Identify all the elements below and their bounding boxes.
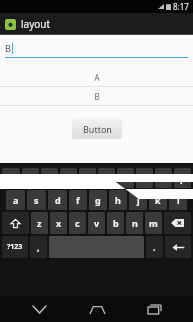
button[interactable]: o xyxy=(155,168,172,188)
staticText: c xyxy=(75,217,80,229)
staticText: x xyxy=(56,217,62,229)
staticText: r xyxy=(66,172,71,184)
staticText: Button xyxy=(83,123,112,135)
staticText: f xyxy=(76,194,80,206)
button[interactable]: B xyxy=(0,87,193,106)
button[interactable]: . xyxy=(146,236,163,258)
staticText: j xyxy=(137,194,140,206)
staticText: ?123 xyxy=(7,242,23,252)
button[interactable]: Recents xyxy=(136,296,172,322)
staticText: B xyxy=(5,42,11,54)
staticText: y xyxy=(104,172,110,184)
button[interactable]: Backspace xyxy=(164,212,191,234)
button[interactable]: k xyxy=(149,190,167,210)
staticText: w xyxy=(27,172,35,184)
button[interactable]: A xyxy=(0,68,193,87)
button[interactable]: x xyxy=(50,212,67,234)
button[interactable]: g xyxy=(89,190,107,210)
staticText: t xyxy=(86,172,90,184)
button[interactable]: e xyxy=(41,168,58,188)
staticText: o xyxy=(161,172,167,184)
staticText: u xyxy=(123,172,129,184)
staticText: i xyxy=(143,172,146,184)
staticText: h xyxy=(115,194,121,206)
button[interactable]: d xyxy=(48,190,67,210)
button[interactable]: l xyxy=(169,190,187,210)
button[interactable]: , xyxy=(30,236,47,258)
button[interactable]: b xyxy=(107,212,124,234)
staticText: g xyxy=(95,194,101,206)
staticText: d xyxy=(55,194,61,206)
button[interactable]: c xyxy=(69,212,86,234)
staticText: layout xyxy=(21,17,51,31)
staticText: , xyxy=(37,241,40,253)
button[interactable]: Hide keyboard xyxy=(21,296,57,322)
staticText: . xyxy=(153,241,156,253)
staticText: a xyxy=(13,194,19,206)
button[interactable]: z xyxy=(31,212,48,234)
button[interactable]: i xyxy=(136,168,153,188)
button[interactable]: p xyxy=(174,168,191,188)
button[interactable]: f xyxy=(69,190,87,210)
staticText: k xyxy=(155,194,161,206)
staticText: z xyxy=(37,217,42,229)
button[interactable]: Home xyxy=(79,296,115,322)
staticText: q xyxy=(8,172,14,184)
button[interactable]: Button xyxy=(72,118,122,139)
button[interactable]: h xyxy=(109,190,127,210)
button[interactable]: s xyxy=(27,190,46,210)
button[interactable]: v xyxy=(88,212,105,234)
staticText: s xyxy=(34,194,39,206)
staticText: n xyxy=(132,217,138,229)
staticText: B xyxy=(94,91,100,102)
button[interactable]: w xyxy=(22,168,39,188)
staticText: m xyxy=(149,217,158,229)
button[interactable]: n xyxy=(126,212,143,234)
button[interactable]: u xyxy=(117,168,134,188)
button[interactable]: r xyxy=(60,168,77,188)
button[interactable]: a xyxy=(6,190,25,210)
button[interactable]: m xyxy=(145,212,162,234)
staticText: b xyxy=(113,217,119,229)
button[interactable]: Shift xyxy=(2,212,29,234)
button[interactable]: j xyxy=(129,190,147,210)
staticText: e xyxy=(47,172,53,184)
staticText: v xyxy=(94,217,100,229)
button[interactable]: B xyxy=(5,42,188,58)
staticText: 8:17 xyxy=(173,1,189,12)
button[interactable]: Enter xyxy=(165,236,191,258)
button[interactable]: q xyxy=(2,168,20,188)
button[interactable]: y xyxy=(98,168,115,188)
button[interactable]: t xyxy=(79,168,96,188)
staticText: l xyxy=(177,194,180,206)
button[interactable]: ?123 xyxy=(2,236,28,258)
staticText: p xyxy=(180,172,186,184)
staticText: A xyxy=(94,72,100,83)
